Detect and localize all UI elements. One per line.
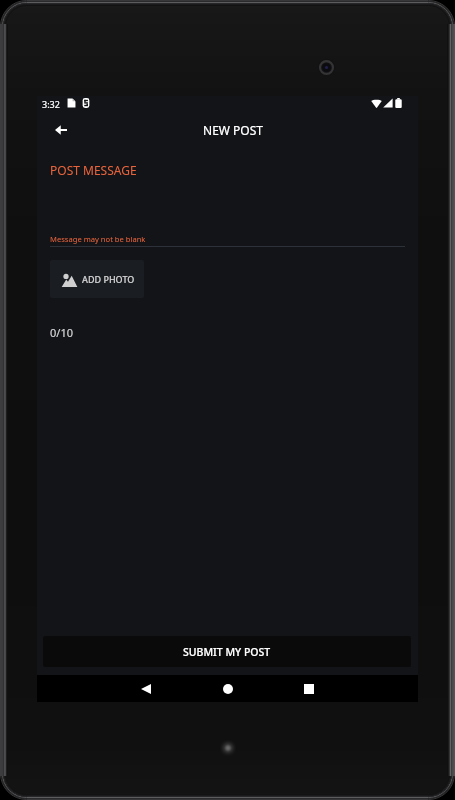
button[interactable]: Recents [286,675,332,702]
button[interactable]: SUBMIT MY POST [43,636,411,667]
staticText: SUBMIT MY POST [183,645,271,659]
button[interactable]: Back [124,675,170,702]
staticText: 3:32 [42,98,60,110]
button[interactable]: Home [205,675,251,702]
staticText: NEW POST [203,122,263,138]
button[interactable]: Back [41,110,81,150]
staticText: ADD PHOTO [82,273,135,285]
button[interactable]: ADD PHOTO [50,260,144,298]
staticText: POST MESSAGE [50,162,137,178]
staticText: Message may not be blank [50,234,146,244]
staticText: 0/10 [50,325,73,340]
button[interactable]: Post message input [50,156,405,247]
